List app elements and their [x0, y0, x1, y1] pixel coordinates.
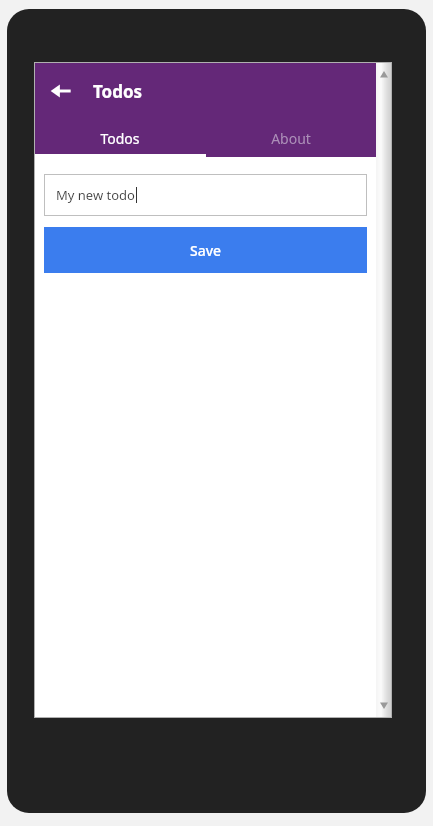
button[interactable]: Back — [41, 71, 81, 111]
staticText: Todos — [100, 129, 140, 148]
button[interactable]: My new todo — [44, 174, 367, 216]
button[interactable]: Scroll up — [378, 69, 390, 81]
staticText: About — [271, 129, 311, 148]
button[interactable]: Save — [44, 227, 367, 273]
staticText: Save — [190, 241, 222, 260]
button[interactable]: Scroll down — [378, 699, 390, 711]
button[interactable]: About — [205, 119, 376, 157]
staticText: My new todo — [56, 186, 135, 204]
staticText: Todos — [93, 80, 143, 103]
button[interactable]: Todos — [35, 119, 205, 157]
